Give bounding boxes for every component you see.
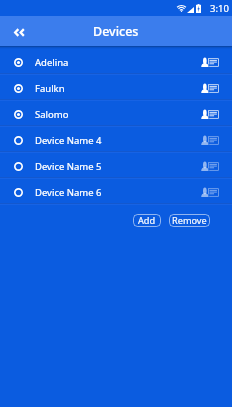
button[interactable]: Device details [198,79,220,97]
button[interactable]: Device details [198,157,220,175]
button[interactable]: Device Name 4 [0,127,232,153]
button[interactable]: Faulkn [0,75,232,101]
button[interactable]: Device Name 5 [0,153,232,179]
staticText: Remove [172,214,207,227]
button[interactable]: Adelina [0,49,232,75]
staticText: Faulkn [35,82,65,95]
button[interactable]: Device details [198,105,220,123]
button[interactable]: Device details [198,53,220,71]
button[interactable]: Device details [198,131,220,149]
staticText: Add [138,214,156,227]
button[interactable]: Device Name 6 [0,179,232,205]
button[interactable]: Back [0,16,30,46]
staticText: 3:10 [210,2,229,15]
staticText: Device Name 4 [35,134,102,147]
staticText: Devices [93,23,139,40]
staticText: Salomo [35,108,69,121]
button[interactable]: Salomo [0,101,232,127]
button[interactable]: Remove [169,214,210,227]
staticText: Device Name 6 [35,186,102,199]
button[interactable]: Add [133,214,161,227]
staticText: Device Name 5 [35,160,102,173]
button[interactable]: Device details [198,183,220,201]
staticText: Adelina [35,56,69,69]
